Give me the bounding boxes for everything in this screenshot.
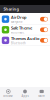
- button[interactable]: Themes Audio: [0, 35, 50, 45]
- staticText: More: [38, 94, 45, 98]
- staticText: Browse: [3, 94, 13, 98]
- button[interactable]: More: [33, 87, 50, 99]
- button[interactable]: Apps: [17, 87, 33, 99]
- button[interactable]: Browse: [0, 87, 17, 99]
- staticText: Everyone: [11, 20, 23, 24]
- button[interactable]: AirDrop: [0, 14, 50, 24]
- staticText: Safe Theme: [11, 25, 32, 30]
- staticText: Bluetooth: [11, 41, 26, 45]
- button[interactable]: Safe Theme: [0, 25, 50, 35]
- staticText: AirDrop: [11, 15, 27, 20]
- staticText: Sharing: [4, 6, 20, 12]
- staticText: Apps: [21, 94, 28, 98]
- staticText: Themes Audio: [11, 36, 39, 41]
- staticText: Automatic: [11, 31, 24, 34]
